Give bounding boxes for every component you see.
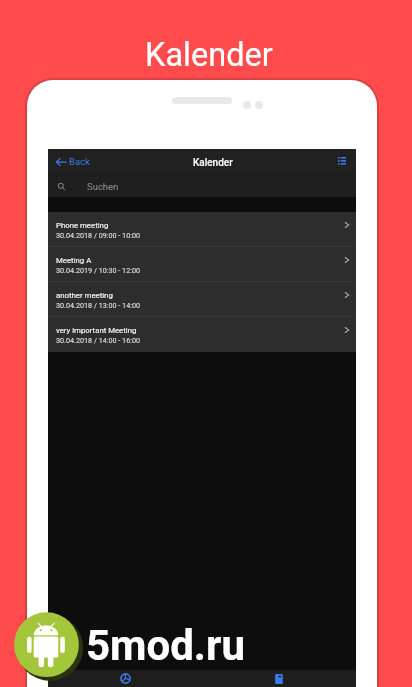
button[interactable]: Phone meeting bbox=[48, 212, 356, 247]
staticText: 30.04.2019 / 10:30 - 12:00 bbox=[56, 266, 140, 274]
staticText: Meeting A bbox=[56, 256, 92, 265]
button[interactable]: Timeline bbox=[48, 670, 202, 687]
button[interactable]: Calendar bbox=[202, 670, 356, 687]
staticText: another meeting bbox=[56, 291, 113, 300]
staticText: 30.04.2018 / 09:00 - 10:00 bbox=[56, 231, 140, 239]
button[interactable]: Meeting A bbox=[48, 247, 356, 282]
staticText: Suchen bbox=[87, 181, 119, 192]
button[interactable]: Back bbox=[48, 152, 96, 171]
staticText: Back bbox=[69, 156, 90, 167]
staticText: Phone meeting bbox=[56, 221, 109, 230]
staticText: 30.04.2018 / 14:00 - 16:00 bbox=[56, 336, 140, 344]
staticText: 30.04.2018 / 13:00 - 14:00 bbox=[56, 301, 140, 309]
staticText: very important Meeting bbox=[56, 326, 137, 335]
button[interactable]: another meeting bbox=[48, 282, 356, 317]
button[interactable]: very important Meeting bbox=[48, 317, 356, 352]
staticText: 5mod.ru bbox=[86, 621, 245, 670]
staticText: Kalender bbox=[193, 157, 233, 169]
button[interactable]: List view bbox=[330, 152, 356, 170]
button[interactable]: Suchen bbox=[48, 173, 356, 197]
staticText: Kalender bbox=[145, 36, 273, 74]
